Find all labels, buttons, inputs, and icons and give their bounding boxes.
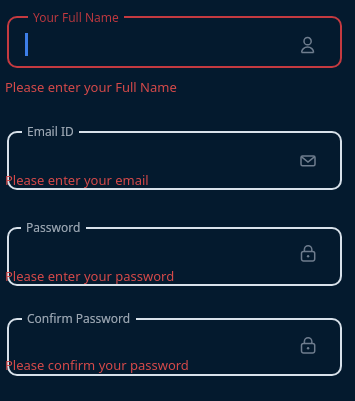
staticText: Please enter your password <box>5 267 175 285</box>
staticText: Email ID <box>27 123 74 139</box>
staticText: Please enter your Full Name <box>5 78 177 96</box>
staticText: Your Full Name <box>33 9 119 25</box>
staticText: Please enter your email <box>5 171 149 189</box>
staticText: Please confirm your password <box>5 356 189 374</box>
button[interactable] <box>7 227 342 286</box>
staticText: Password <box>26 219 81 235</box>
button[interactable] <box>7 16 342 68</box>
staticText: Confirm Password <box>27 310 131 326</box>
button[interactable] <box>7 318 342 376</box>
button[interactable] <box>7 131 342 190</box>
